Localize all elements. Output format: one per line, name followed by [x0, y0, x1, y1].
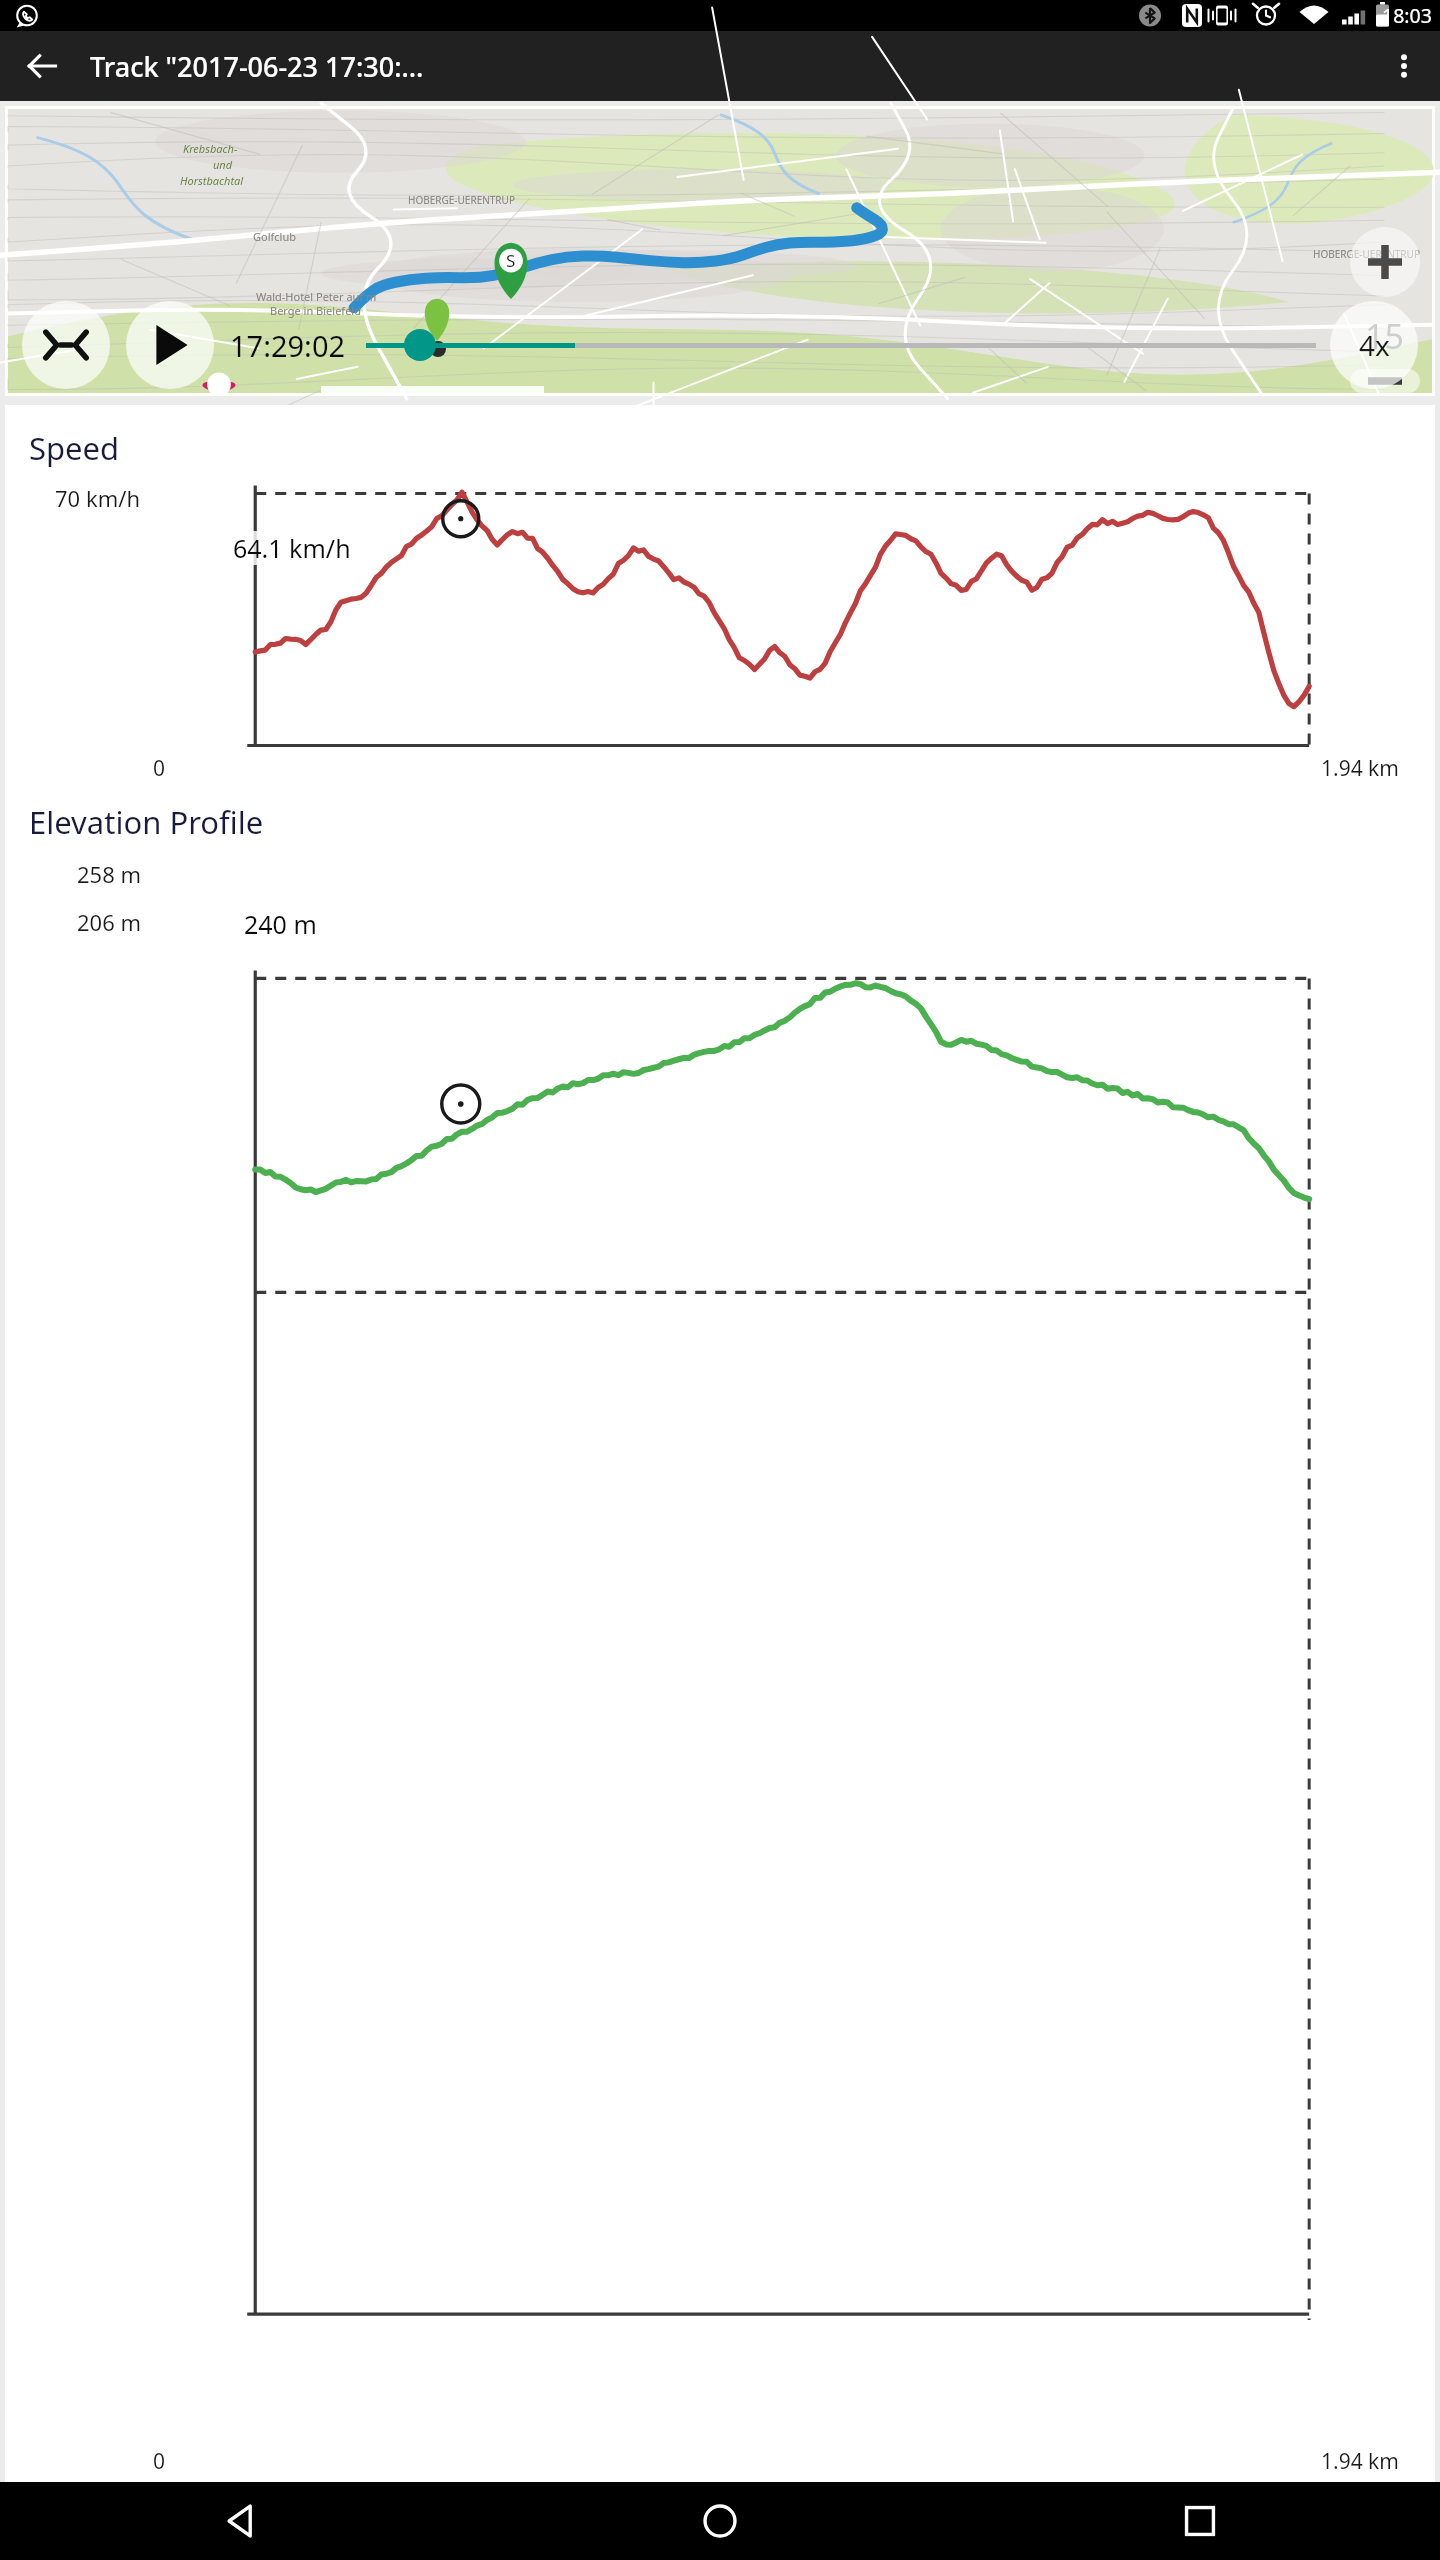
staticText: Elevation Profile: [29, 801, 264, 843]
button[interactable]: Back: [14, 38, 70, 94]
button[interactable]: Playback position: [404, 329, 436, 361]
button[interactable]: Fit track to screen: [22, 301, 110, 389]
staticText: Track "2017-06-23 17:30:…: [90, 48, 424, 85]
staticText: Berge in Bielefeld: [270, 303, 361, 318]
staticText: Horstbachtal: [180, 173, 244, 188]
staticText: und: [213, 157, 233, 172]
staticText: 206 m: [77, 907, 142, 937]
staticText: S: [506, 249, 516, 272]
staticText: 0: [153, 754, 166, 783]
button[interactable]: Play: [126, 301, 214, 389]
button[interactable]: Zoom out: [1350, 369, 1420, 393]
staticText: 17:29:02: [230, 326, 346, 365]
staticText: HOBERGE-UERENTRUP: [1313, 247, 1420, 261]
staticText: 70 km/h: [55, 483, 140, 513]
staticText: 15: [1365, 313, 1404, 359]
staticText: 240 m: [244, 907, 317, 941]
staticText: Speed: [29, 427, 120, 469]
staticText: HOBERGE-UERENTRUP: [408, 193, 515, 207]
staticText: Golfclub: [253, 229, 296, 244]
staticText: 4x: [1359, 326, 1390, 364]
button[interactable]: 4x: [1330, 301, 1418, 389]
button[interactable]: Back: [0, 2482, 480, 2560]
staticText: 18:03: [1382, 2, 1432, 29]
staticText: 64.1 km/h: [233, 531, 351, 565]
staticText: 1.94 km: [1321, 754, 1399, 783]
staticText: Wald-Hotel Peter auf'm: [256, 289, 377, 304]
staticText: 1.94 km: [1321, 2447, 1399, 2476]
button[interactable]: Recent apps: [960, 2482, 1440, 2560]
button[interactable]: Home: [480, 2482, 960, 2560]
staticText: 258 m: [77, 859, 142, 889]
staticText: 0: [153, 2447, 166, 2476]
staticText: Krebsbach-: [183, 141, 238, 156]
button[interactable]: More options: [1376, 38, 1432, 94]
button[interactable]: Zoom in: [1350, 227, 1420, 297]
